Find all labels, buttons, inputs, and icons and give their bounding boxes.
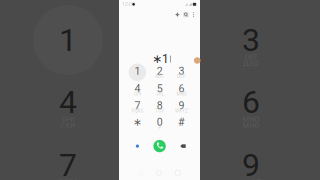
button[interactable]: 2 <box>149 64 170 81</box>
staticText: PQRS <box>131 108 143 113</box>
button[interactable]: Recents <box>168 168 187 178</box>
button[interactable]: 7 <box>127 98 148 115</box>
staticText: ГХИ <box>61 121 75 130</box>
staticText: WXYZ <box>175 108 188 113</box>
staticText: 9 <box>179 99 185 112</box>
button[interactable]: 1 <box>127 64 148 81</box>
staticText: 9 <box>242 146 260 180</box>
staticText: # <box>178 116 185 128</box>
button[interactable]: 5 <box>149 81 170 98</box>
button[interactable]: 9 <box>171 98 192 115</box>
staticText: 2 <box>157 65 163 77</box>
button[interactable]: Video call <box>173 10 182 19</box>
button[interactable]: Call <box>151 137 169 155</box>
staticText: DEF <box>244 53 257 61</box>
staticText: GHI <box>134 91 141 96</box>
button[interactable]: 4 <box>127 81 148 98</box>
staticText: 3 <box>179 65 185 77</box>
staticText: DEF <box>177 74 186 79</box>
staticText: GHI <box>62 115 74 123</box>
staticText: MNO <box>242 115 259 123</box>
button[interactable]: # <box>171 115 192 132</box>
button[interactable]: 3 <box>171 64 192 81</box>
button[interactable]: 0 <box>149 115 170 132</box>
staticText: 1 <box>59 21 77 59</box>
button[interactable]: More options <box>189 10 198 19</box>
staticText: 12:04 <box>122 1 135 7</box>
staticText: MNO <box>177 91 187 96</box>
staticText: 3 <box>242 21 260 59</box>
staticText: МНО <box>242 121 259 130</box>
staticText: 6 <box>242 83 260 121</box>
staticText: 7 <box>59 146 77 180</box>
staticText: ДЕФ <box>243 59 259 68</box>
button[interactable]: 8 <box>149 98 170 115</box>
button[interactable]: Delete <box>174 137 192 155</box>
staticText: + <box>158 125 161 130</box>
button[interactable]: ∗ <box>127 115 148 132</box>
staticText: ∗1 <box>152 52 169 66</box>
button[interactable]: Video call <box>128 137 146 155</box>
staticText: 1 <box>134 65 140 77</box>
button[interactable]: Home <box>149 168 168 178</box>
staticText: 6 <box>179 82 185 95</box>
staticText: 8 <box>157 99 163 112</box>
staticText: 5 <box>157 82 163 95</box>
staticText: 0 <box>157 116 163 128</box>
staticText: 4 <box>134 82 140 95</box>
staticText: TUV <box>155 108 164 113</box>
button[interactable]: Search <box>181 10 190 19</box>
staticText: 4 <box>59 83 77 121</box>
staticText: ∗ <box>133 116 142 128</box>
staticText: 7 <box>134 99 140 112</box>
button[interactable]: 6 <box>171 81 192 98</box>
staticText: ABC <box>155 74 164 79</box>
staticText: JKL <box>156 91 164 96</box>
